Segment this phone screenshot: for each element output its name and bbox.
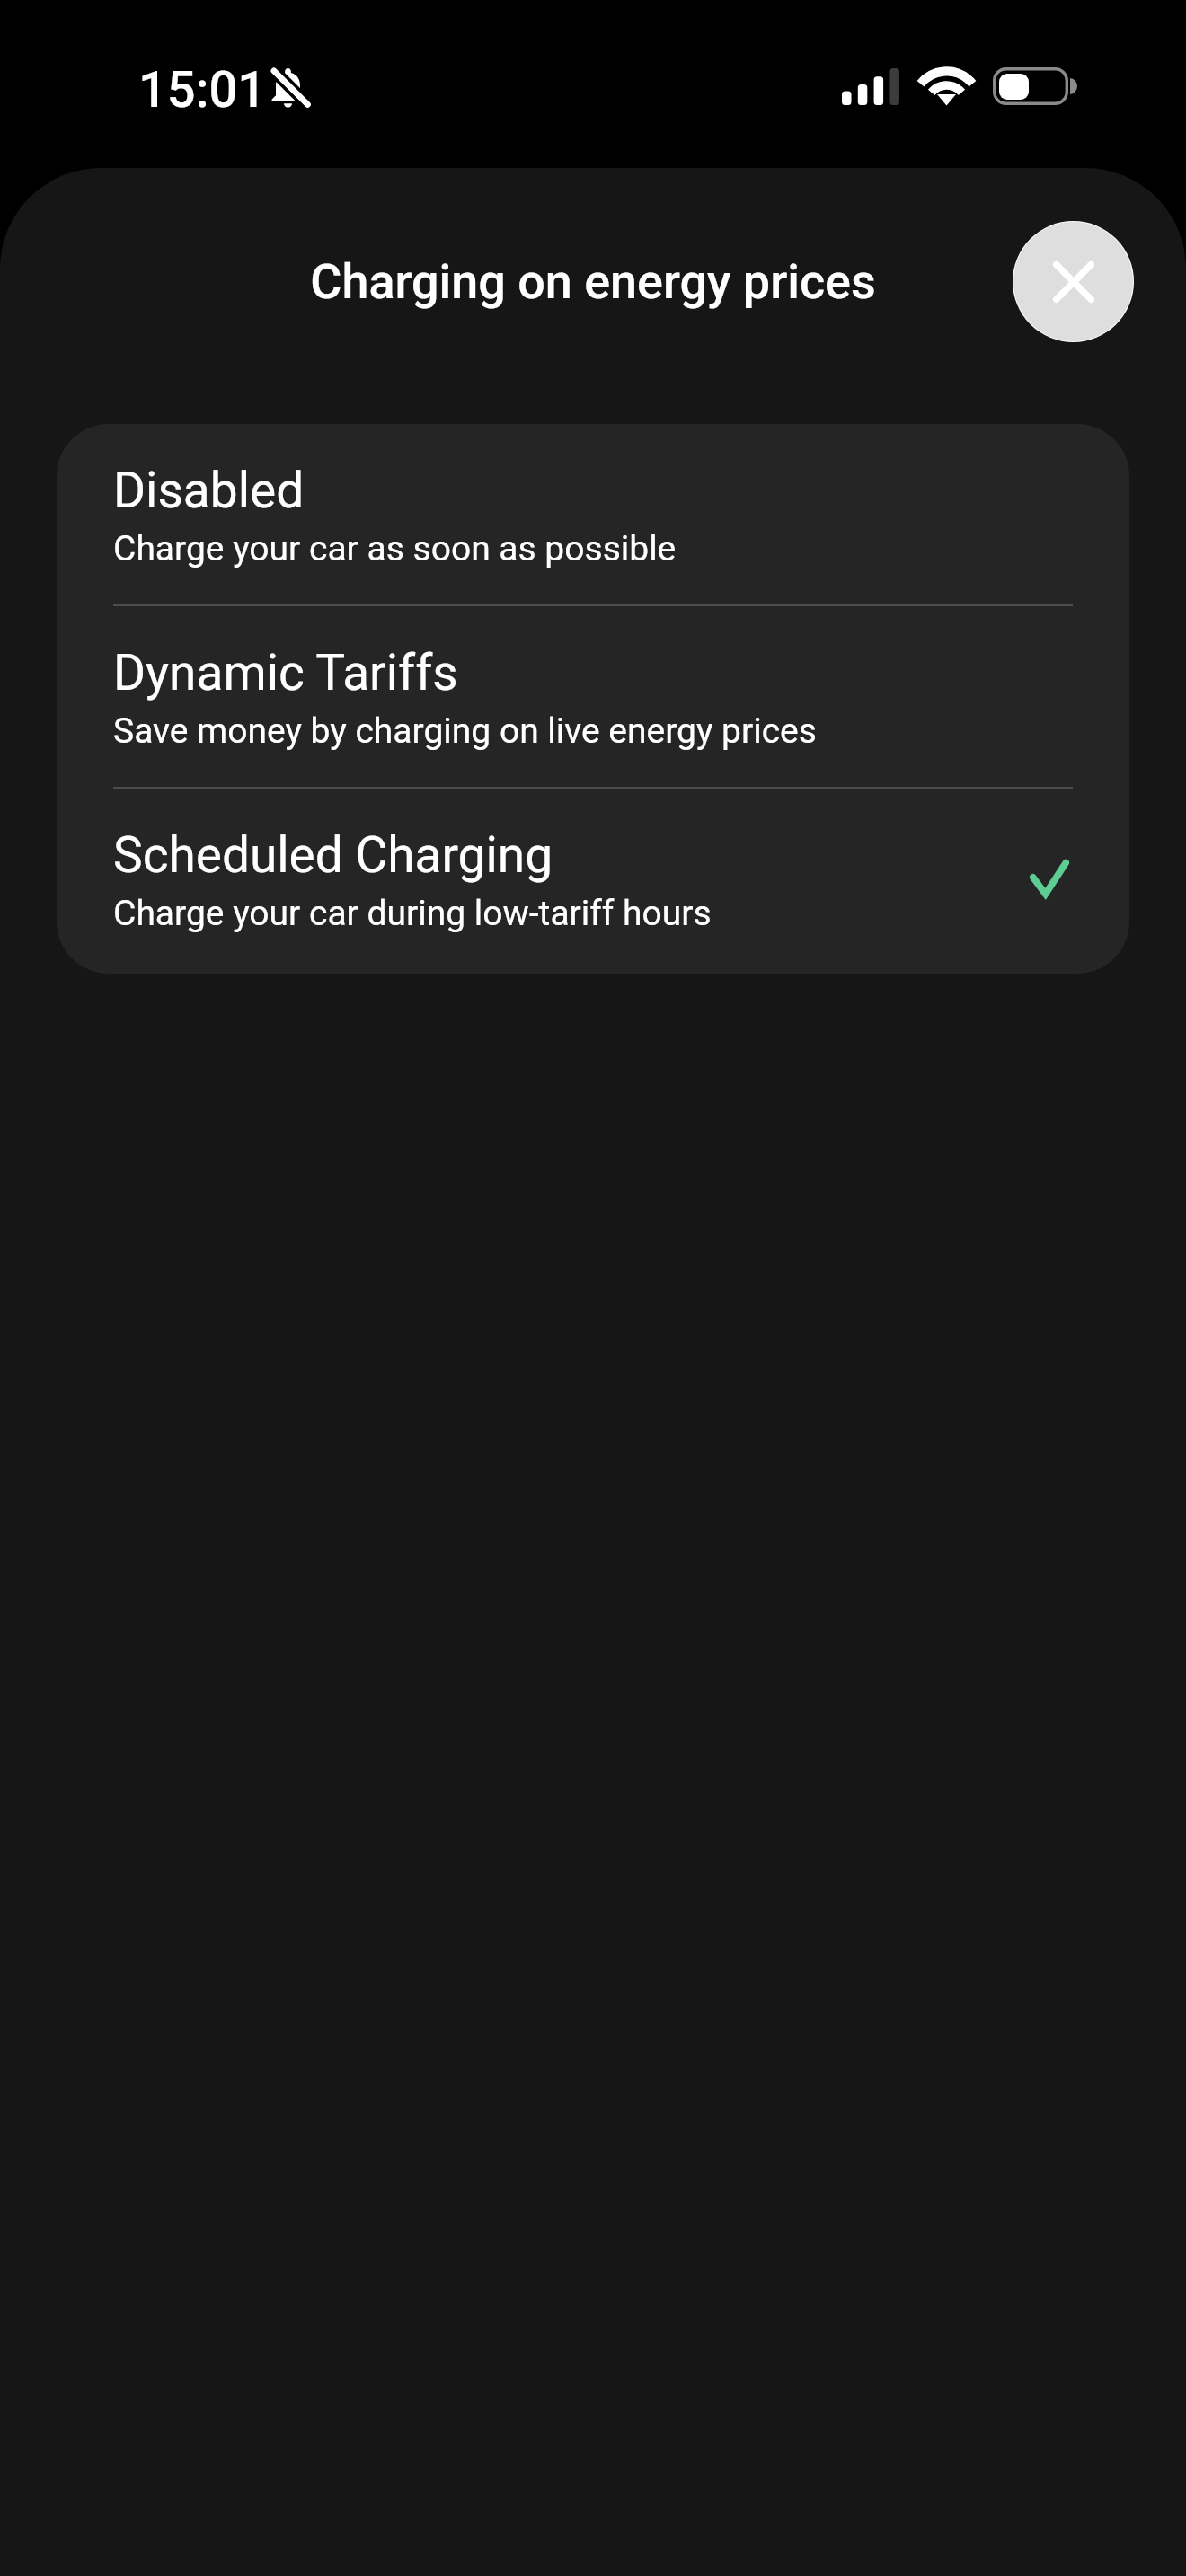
staticText: Disabled bbox=[113, 462, 305, 519]
button[interactable]: Close bbox=[1013, 221, 1134, 342]
staticText: Save money by charging on live energy pr… bbox=[113, 710, 817, 752]
staticText: Charge your car as soon as possible bbox=[113, 528, 677, 569]
button[interactable]: Scheduled Charging bbox=[57, 789, 1129, 969]
button[interactable]: Dynamic Tariffs bbox=[57, 606, 1129, 787]
staticText: 15:01 bbox=[138, 60, 267, 119]
staticText: Dynamic Tariffs bbox=[113, 644, 458, 701]
staticText: Charge your car during low-tariff hours bbox=[113, 893, 712, 934]
button[interactable]: Disabled bbox=[57, 424, 1129, 604]
staticText: Scheduled Charging bbox=[113, 826, 553, 884]
staticText: Charging on energy prices bbox=[0, 253, 1186, 310]
